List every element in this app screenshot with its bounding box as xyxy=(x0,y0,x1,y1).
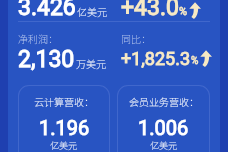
staticText: +43.0 xyxy=(121,0,179,21)
staticText: 净利润： xyxy=(18,31,58,45)
staticText: % xyxy=(179,5,188,18)
other: Increase xyxy=(199,50,212,67)
staticText: 亿美元 xyxy=(50,139,78,152)
staticText: 亿美元 xyxy=(150,139,178,152)
staticText: 同比： xyxy=(121,31,151,45)
button[interactable]: 云计算营收： xyxy=(18,85,110,152)
other: Increase xyxy=(188,2,201,19)
staticText: 1.196 xyxy=(39,116,90,139)
staticText: 亿美元 xyxy=(77,4,107,18)
staticText: 云计算营收： xyxy=(34,94,94,108)
staticText: 3.426 xyxy=(18,0,76,21)
staticText: +1,825.3 xyxy=(121,48,191,69)
staticText: 2,130 xyxy=(18,46,75,73)
staticText: % xyxy=(191,55,199,67)
staticText: 1.006 xyxy=(138,116,189,139)
button[interactable]: 会员业务营收： xyxy=(117,85,210,152)
staticText: 万美元 xyxy=(76,56,106,70)
staticText: 会员业务营收： xyxy=(129,94,199,108)
